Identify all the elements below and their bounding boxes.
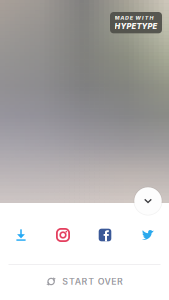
button[interactable]: Collapse [133, 186, 163, 216]
button[interactable]: Share to Instagram [42, 219, 84, 251]
button[interactable]: Save [0, 219, 42, 251]
staticText: MADE WITH [114, 15, 153, 21]
staticText: START OVER [62, 276, 123, 287]
button[interactable]: Share to Twitter [126, 219, 169, 251]
button[interactable]: MADE WITH [110, 12, 162, 33]
button[interactable]: START OVER [0, 265, 169, 298]
staticText: HYPETYPE [114, 22, 157, 31]
button[interactable]: Share to Facebook [84, 219, 126, 251]
